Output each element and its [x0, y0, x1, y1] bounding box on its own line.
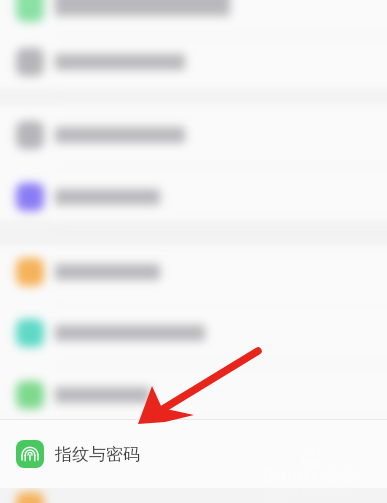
button[interactable]: 指纹与密码 [0, 425, 387, 483]
other: Annotation arrow [0, 0, 387, 503]
staticText: 指纹与密码 [55, 444, 140, 465]
staticText: jingyan.baidu.com [264, 484, 351, 498]
